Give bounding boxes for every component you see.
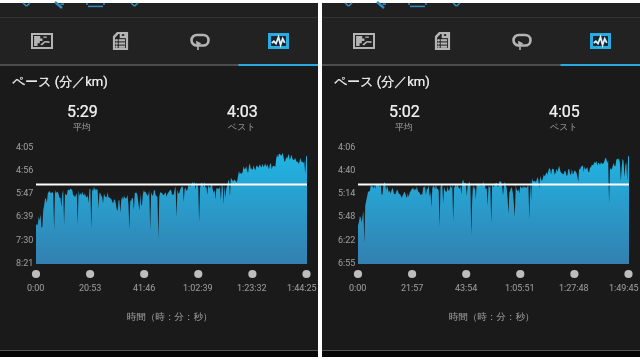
staticText: 5:29 [67,102,98,121]
button[interactable]: Laps [160,18,239,64]
staticText: 7:30 [16,235,34,246]
button[interactable]: Details [403,18,482,64]
staticText: 4:05 [16,142,34,153]
staticText: 6:55 [338,258,356,269]
staticText: ベスト [550,121,578,132]
staticText: 0:00 [27,283,45,294]
staticText: 1:02:39 [183,283,213,294]
staticText: 41:46 [133,283,156,294]
staticText: 4:56 [16,165,34,176]
staticText: ペース (分／km) [12,73,108,89]
staticText: 21:57 [401,283,424,294]
button[interactable]: Charts [239,18,318,64]
staticText: 5:14 [338,188,356,199]
staticText: 1:27:48 [559,283,589,294]
staticText: 6:39 [16,211,34,222]
staticText: 6:22 [338,235,356,246]
staticText: 8:21 [16,258,34,269]
staticText: 4:03 [227,102,258,121]
button[interactable]: Details [81,18,160,64]
staticText: 5:48 [338,211,356,222]
staticText: 5:02 [389,102,420,121]
staticText: 1:23:32 [237,283,267,294]
staticText: 4:40 [338,165,356,176]
staticText: ペース (分／km) [334,73,430,89]
staticText: 43:54 [455,283,478,294]
staticText: 5:47 [16,188,34,199]
staticText: 20:53 [79,283,102,294]
staticText: 時間（時：分：秒） [127,311,213,323]
button[interactable]: Map [325,18,403,64]
staticText: 平均 [395,121,413,132]
staticText: 1:44:25 [287,283,317,294]
staticText: ベスト [228,121,256,132]
button[interactable]: Map [3,18,81,64]
staticText: 1:05:51 [505,283,535,294]
staticText: 0:00 [349,283,367,294]
button[interactable]: Laps [482,18,561,64]
button[interactable]: Charts [561,18,640,64]
staticText: 1:49:45 [609,283,639,294]
staticText: 4:05 [549,102,580,121]
staticText: 4:06 [338,142,356,153]
staticText: 時間（時：分：秒） [449,311,535,323]
staticText: 平均 [73,121,91,132]
